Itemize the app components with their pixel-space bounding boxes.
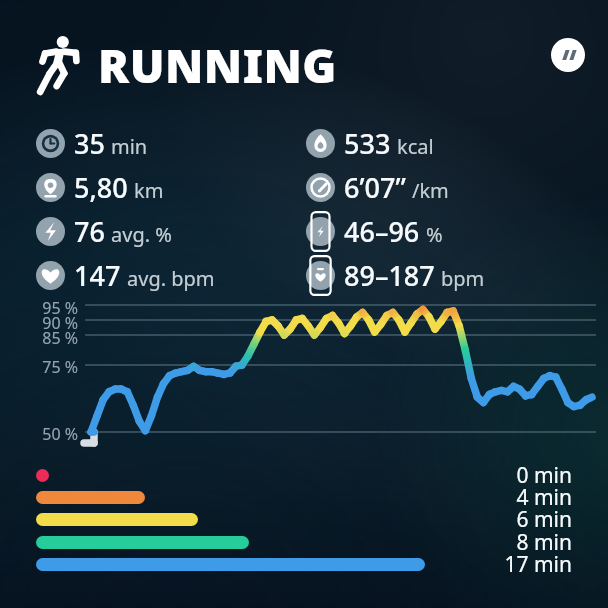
staticText: bpm xyxy=(441,265,485,292)
staticText: 8 min xyxy=(516,528,572,557)
button[interactable]: Zone 2: 8 min xyxy=(36,536,249,549)
other: Running activity xyxy=(30,33,88,95)
staticText: 6’07” xyxy=(344,169,406,206)
button[interactable]: Zone 5: 0 min xyxy=(36,469,49,482)
staticText: 17 min xyxy=(504,550,572,579)
staticText: 5,80 xyxy=(74,169,128,206)
button[interactable]: km xyxy=(36,169,164,206)
staticText: avg. % xyxy=(111,221,172,248)
staticText: % xyxy=(426,221,443,248)
staticText: kcal xyxy=(397,133,434,160)
button[interactable]: kcal xyxy=(306,125,434,162)
other: % xyxy=(306,217,335,246)
other: avg. bpm xyxy=(36,261,65,290)
button[interactable]: App logo xyxy=(551,38,585,72)
staticText: 6 min xyxy=(516,505,572,534)
staticText: 533 xyxy=(344,125,391,162)
staticText: 35 xyxy=(74,125,105,162)
staticText: 75 % xyxy=(42,356,78,378)
other: min xyxy=(36,129,65,158)
button[interactable]: /km xyxy=(306,169,449,206)
button[interactable]: Zone 1: 17 min xyxy=(36,558,425,571)
staticText: 95 % xyxy=(42,297,78,319)
button[interactable]: avg. % xyxy=(36,213,172,250)
staticText: 76 xyxy=(74,213,105,250)
button[interactable]: Zone 3: 6 min xyxy=(36,513,198,526)
other: /km xyxy=(306,173,335,202)
staticText: /km xyxy=(412,177,449,204)
staticText: km xyxy=(134,177,164,204)
button[interactable]: avg. bpm xyxy=(36,257,215,294)
staticText: 4 min xyxy=(516,483,572,512)
staticText: 147 xyxy=(74,257,121,294)
other: avg. % xyxy=(36,217,65,246)
button[interactable]: Zone 4: 4 min xyxy=(36,491,145,504)
staticText: 0 min xyxy=(516,461,572,490)
staticText: 90 % xyxy=(42,312,78,334)
staticText: 85 % xyxy=(42,327,78,349)
staticText: 50 % xyxy=(42,423,78,445)
button[interactable]: bpm xyxy=(306,257,485,294)
staticText: RUNNING xyxy=(98,34,337,97)
button[interactable]: Running activity xyxy=(30,32,337,95)
button[interactable]: % xyxy=(306,213,443,250)
other: bpm xyxy=(306,261,335,290)
staticText: 46–96 xyxy=(344,213,420,250)
staticText: avg. bpm xyxy=(127,265,215,292)
button[interactable]: min xyxy=(36,125,148,162)
other: km xyxy=(36,173,65,202)
staticText: 89–187 xyxy=(344,257,435,294)
staticText: min xyxy=(111,133,148,160)
other: kcal xyxy=(306,129,335,158)
